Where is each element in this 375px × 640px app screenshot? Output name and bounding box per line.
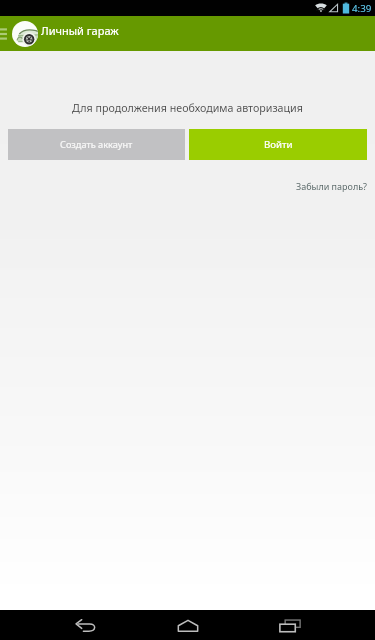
staticText: Личный гараж xyxy=(41,23,119,38)
staticText: Забыли пароль? xyxy=(296,180,367,192)
button[interactable]: Recents xyxy=(266,610,314,640)
button[interactable]: Забыли пароль? xyxy=(286,178,375,194)
staticText: Для продолжения необходима авторизация xyxy=(0,101,375,116)
staticText: Создать аккаунт xyxy=(60,138,133,151)
staticText: 4:39 xyxy=(352,2,372,15)
button[interactable]: Back xyxy=(61,610,109,640)
button[interactable]: Войти xyxy=(189,129,367,160)
button[interactable]: Menu xyxy=(0,21,12,47)
staticText: Войти xyxy=(264,138,293,151)
button[interactable]: Home xyxy=(164,610,212,640)
button[interactable]: Личный гараж xyxy=(41,16,141,51)
button[interactable]: Создать аккаунт xyxy=(8,129,185,160)
